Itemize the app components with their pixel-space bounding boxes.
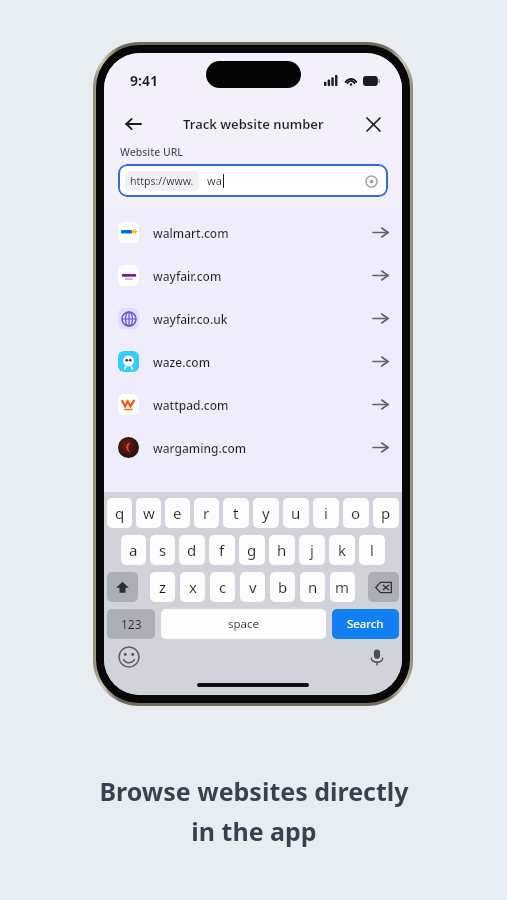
button[interactable]: k bbox=[329, 535, 355, 565]
button[interactable]: b bbox=[270, 572, 295, 602]
staticText: w bbox=[143, 503, 155, 523]
staticText: waze.com bbox=[153, 354, 211, 370]
button[interactable]: walmart.com bbox=[104, 211, 402, 254]
staticText: s bbox=[159, 540, 167, 560]
staticText: d bbox=[187, 540, 197, 560]
staticText: p bbox=[381, 503, 391, 523]
button[interactable]: t bbox=[223, 498, 249, 528]
button[interactable]: z bbox=[150, 572, 175, 602]
button[interactable]: https://www. bbox=[118, 164, 388, 197]
staticText: a bbox=[129, 540, 138, 560]
button[interactable]: i bbox=[313, 498, 339, 528]
staticText: j bbox=[310, 540, 314, 560]
staticText: m bbox=[335, 577, 350, 597]
staticText: wayfair.com bbox=[153, 268, 222, 284]
button[interactable]: Backspace bbox=[368, 572, 399, 602]
button[interactable]: 123 bbox=[107, 609, 155, 639]
staticText: x bbox=[189, 577, 197, 597]
staticText: in the app bbox=[191, 814, 317, 848]
staticText: i bbox=[324, 503, 328, 523]
staticText: 9:41 bbox=[130, 71, 158, 90]
button[interactable]: space bbox=[161, 609, 326, 639]
button[interactable]: q bbox=[107, 498, 132, 528]
button[interactable]: o bbox=[343, 498, 369, 528]
button[interactable]: y bbox=[253, 498, 279, 528]
staticText: k bbox=[338, 540, 347, 560]
staticText: Browse websites directly bbox=[99, 774, 409, 808]
button[interactable]: Close bbox=[356, 107, 390, 141]
staticText: g bbox=[247, 540, 257, 560]
staticText: h bbox=[277, 540, 287, 560]
button[interactable]: waze.com bbox=[104, 340, 402, 383]
staticText: wa bbox=[207, 173, 222, 188]
button[interactable]: h bbox=[269, 535, 295, 565]
button[interactable]: Shift bbox=[107, 572, 138, 602]
staticText: y bbox=[262, 503, 270, 523]
button[interactable]: m bbox=[330, 572, 355, 602]
button[interactable]: x bbox=[180, 572, 205, 602]
button[interactable]: d bbox=[179, 535, 205, 565]
staticText: c bbox=[219, 577, 227, 597]
button[interactable]: wargaming.com bbox=[104, 426, 402, 469]
staticText: space bbox=[228, 616, 260, 632]
staticText: n bbox=[308, 577, 318, 597]
staticText: l bbox=[370, 540, 374, 560]
staticText: walmart.com bbox=[153, 225, 229, 241]
button[interactable]: e bbox=[165, 498, 190, 528]
staticText: e bbox=[173, 503, 182, 523]
button[interactable]: p bbox=[373, 498, 399, 528]
staticText: t bbox=[233, 503, 239, 523]
button[interactable]: n bbox=[300, 572, 325, 602]
button[interactable]: j bbox=[299, 535, 325, 565]
button[interactable]: l bbox=[359, 535, 385, 565]
button[interactable]: Search bbox=[332, 609, 399, 639]
button[interactable]: wattpad.com bbox=[104, 383, 402, 426]
staticText: u bbox=[291, 503, 301, 523]
button[interactable]: r bbox=[194, 498, 219, 528]
staticText: wattpad.com bbox=[153, 397, 229, 413]
staticText: Website URL bbox=[120, 145, 183, 159]
staticText: wargaming.com bbox=[153, 440, 247, 456]
button[interactable]: Emoji bbox=[118, 646, 140, 668]
button[interactable]: wayfair.co.uk bbox=[104, 297, 402, 340]
button[interactable]: f bbox=[209, 535, 235, 565]
button[interactable]: Back bbox=[116, 107, 150, 141]
button[interactable]: wayfair.com bbox=[104, 254, 402, 297]
button[interactable]: v bbox=[240, 572, 265, 602]
staticText: wayfair.co.uk bbox=[153, 311, 228, 327]
staticText: v bbox=[249, 577, 257, 597]
staticText: Search bbox=[347, 616, 384, 632]
button[interactable]: u bbox=[283, 498, 309, 528]
button[interactable]: a bbox=[121, 535, 146, 565]
staticText: b bbox=[278, 577, 288, 597]
button[interactable]: s bbox=[150, 535, 175, 565]
button[interactable]: Clear bbox=[361, 171, 381, 191]
button[interactable]: Dictation bbox=[366, 646, 388, 668]
staticText: o bbox=[351, 503, 361, 523]
staticText: https://www. bbox=[130, 174, 194, 188]
staticText: z bbox=[159, 577, 167, 597]
staticText: 123 bbox=[121, 616, 142, 632]
staticText: Track website number bbox=[183, 115, 324, 133]
button[interactable]: w bbox=[136, 498, 161, 528]
staticText: f bbox=[219, 540, 225, 560]
staticText: r bbox=[203, 503, 210, 523]
button[interactable]: c bbox=[210, 572, 235, 602]
staticText: q bbox=[115, 503, 125, 523]
button[interactable]: g bbox=[239, 535, 265, 565]
